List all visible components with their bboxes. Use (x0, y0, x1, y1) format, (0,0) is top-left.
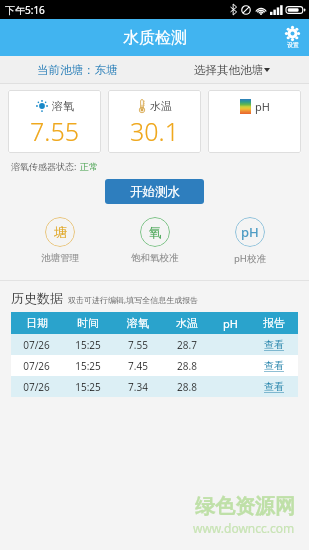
staticText: 溶氧传感器状态: (11, 160, 77, 172)
button[interactable]: 选择其他池塘 (154, 56, 309, 84)
staticText: 查看 (264, 359, 284, 372)
staticText: 查看 (264, 380, 284, 393)
button[interactable]: 查看 (250, 376, 298, 397)
staticText: 日期 (26, 316, 48, 330)
button[interactable]: 07/26 (11, 334, 298, 355)
staticText: 绿色资源网 (195, 494, 295, 519)
staticText: pH (255, 99, 270, 114)
staticText: pH校准 (234, 252, 266, 265)
button[interactable]: 设置 (283, 25, 302, 50)
staticText: 07/26 (23, 338, 50, 352)
staticText: 07/26 (23, 359, 50, 373)
staticText: 选择其他池塘 (194, 63, 263, 77)
button[interactable]: pH (208, 90, 301, 153)
button[interactable]: 当前池塘：东塘 (0, 56, 154, 84)
staticText: www.downcc.com (193, 520, 295, 536)
staticText: 7.55 (128, 338, 148, 352)
staticText: 28.8 (177, 359, 197, 373)
button[interactable]: pH (202, 216, 297, 266)
staticText: 时间 (77, 316, 99, 330)
button[interactable]: 塘 (12, 216, 107, 265)
staticText: pH (241, 223, 259, 241)
button[interactable]: 查看 (250, 334, 298, 355)
staticText: 7.45 (128, 359, 148, 373)
staticText: 溶氧 (127, 316, 149, 330)
staticText: 塘 (54, 224, 67, 240)
staticText: 报告 (263, 316, 285, 330)
button[interactable]: 07/26 (11, 355, 298, 376)
button[interactable]: 溶氧 (8, 90, 101, 153)
staticText: 开始测水 (130, 184, 180, 200)
staticText: 15:25 (75, 380, 101, 394)
staticText: 7.34 (128, 380, 148, 394)
staticText: 氧 (149, 224, 162, 240)
staticText: 28.8 (177, 380, 197, 394)
staticText: 水质检测 (123, 28, 187, 48)
staticText: 当前池塘：东塘 (37, 63, 118, 77)
staticText: 正常 (80, 161, 98, 172)
staticText: 水温 (150, 99, 172, 113)
staticText: 7.55 (30, 114, 79, 148)
staticText: 溶氧 (52, 99, 74, 113)
staticText: 历史数据 (11, 290, 63, 306)
staticText: 30.1 (130, 114, 179, 148)
staticText: 下午5:16 (5, 3, 45, 17)
button[interactable]: 氧 (107, 216, 202, 265)
staticText: 15:25 (75, 359, 101, 373)
staticText: 水温 (176, 316, 198, 330)
staticText: 15:25 (75, 338, 101, 352)
button[interactable]: 07/26 (11, 376, 298, 397)
staticText: 饱和氧校准 (131, 252, 179, 264)
staticText: 28.7 (177, 338, 197, 352)
button[interactable]: 开始测水 (105, 179, 204, 204)
button[interactable]: 水温 (108, 90, 201, 153)
staticText: 双击可进行编辑,填写全信息生成报告 (68, 294, 199, 305)
staticText: 池塘管理 (41, 252, 79, 264)
staticText: 07/26 (23, 380, 50, 394)
button[interactable]: 查看 (250, 355, 298, 376)
staticText: 设置 (287, 41, 299, 49)
staticText: 查看 (264, 338, 284, 351)
staticText: pH (223, 316, 238, 331)
